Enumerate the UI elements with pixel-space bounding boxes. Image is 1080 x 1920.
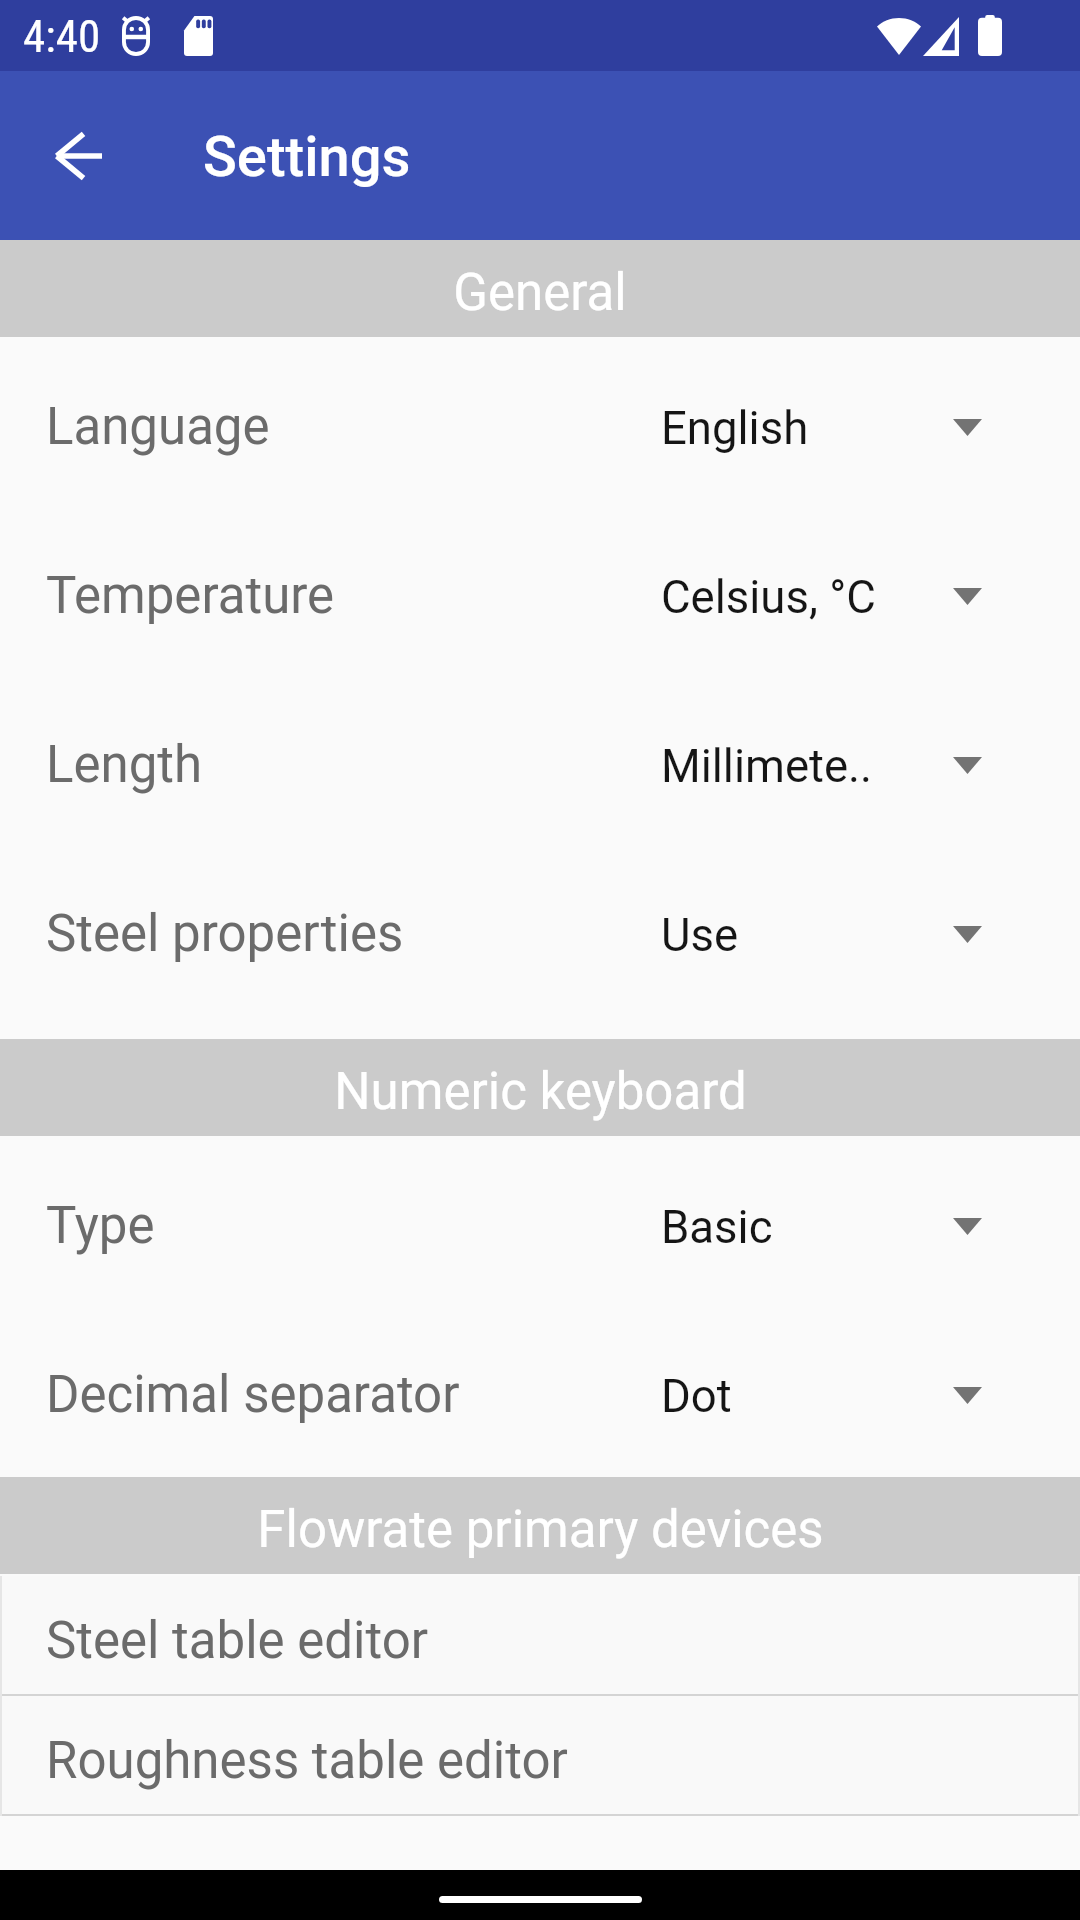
staticText: Length xyxy=(46,735,203,795)
button[interactable]: Type xyxy=(0,1136,1080,1305)
button[interactable]: Steel properties xyxy=(0,844,1080,1013)
staticText: English xyxy=(661,402,911,455)
staticText: Decimal separator xyxy=(46,1365,460,1425)
staticText: General xyxy=(453,263,627,323)
staticText: Temperature xyxy=(46,566,335,626)
staticText: Numeric keyboard xyxy=(334,1062,747,1122)
staticText: Steel properties xyxy=(46,904,404,964)
staticText: Roughness table editor xyxy=(46,1731,568,1791)
button[interactable]: Decimal separator xyxy=(0,1305,1080,1474)
button[interactable]: Roughness table editor xyxy=(0,1696,1080,1816)
staticText: Settings xyxy=(203,124,411,190)
staticText: 4:40 xyxy=(23,10,101,63)
button[interactable]: Length xyxy=(0,675,1080,844)
button[interactable]: Back xyxy=(22,100,134,212)
staticText: Basic xyxy=(661,1201,911,1254)
staticText: Type xyxy=(46,1196,155,1256)
staticText: Millimete.. xyxy=(661,740,911,793)
staticText: Celsius, °C xyxy=(661,571,911,624)
staticText: Dot xyxy=(661,1370,911,1423)
button[interactable]: Language xyxy=(0,337,1080,506)
button[interactable]: Steel table editor xyxy=(0,1576,1080,1696)
staticText: Language xyxy=(46,397,270,457)
staticText: Steel table editor xyxy=(46,1611,429,1671)
button[interactable]: Temperature xyxy=(0,506,1080,675)
staticText: Flowrate primary devices xyxy=(257,1500,824,1560)
staticText: Use xyxy=(661,909,911,962)
